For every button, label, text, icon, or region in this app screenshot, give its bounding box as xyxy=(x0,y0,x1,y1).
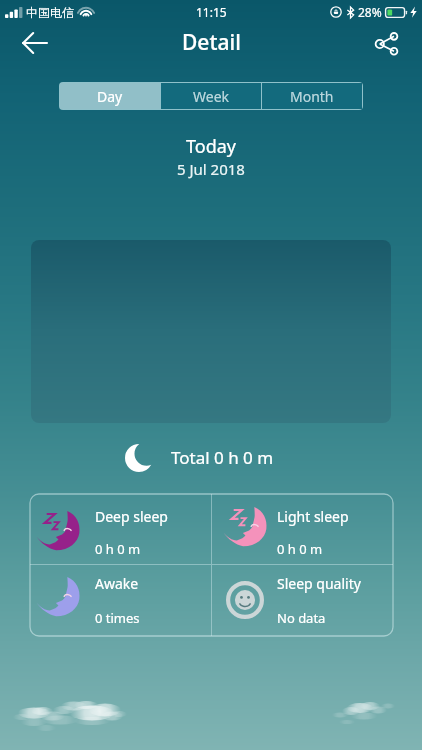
button[interactable]: Deep sleep xyxy=(30,494,211,564)
button[interactable]: Day xyxy=(60,83,160,109)
staticText: Today xyxy=(186,134,236,159)
staticText: Detail xyxy=(182,28,241,57)
staticText: 0 h 0 m xyxy=(277,540,323,558)
button[interactable]: Back xyxy=(13,21,57,65)
button[interactable]: Sleep quality xyxy=(212,565,393,636)
staticText: 0 times xyxy=(95,609,140,627)
staticText: 中国电信 xyxy=(26,5,74,20)
staticText: 28% xyxy=(358,4,382,20)
staticText: No data xyxy=(277,609,326,627)
staticText: 0 h 0 m xyxy=(95,540,141,558)
staticText: Month xyxy=(290,87,334,106)
staticText: Week xyxy=(193,87,230,106)
button[interactable]: Week xyxy=(161,83,261,109)
staticText: Day xyxy=(97,87,123,106)
staticText: Awake xyxy=(95,574,139,593)
staticText: Light sleep xyxy=(277,507,349,526)
staticText: Deep sleep xyxy=(95,507,168,526)
button[interactable]: Month xyxy=(262,83,362,109)
button[interactable]: Light sleep xyxy=(212,494,393,564)
staticText: 11:15 xyxy=(196,4,227,20)
staticText: 5 Jul 2018 xyxy=(177,159,245,179)
staticText: Total 0 h 0 m xyxy=(171,446,274,469)
button[interactable]: Awake xyxy=(30,565,211,636)
staticText: Sleep quality xyxy=(277,574,361,593)
button[interactable]: Share xyxy=(364,21,408,65)
